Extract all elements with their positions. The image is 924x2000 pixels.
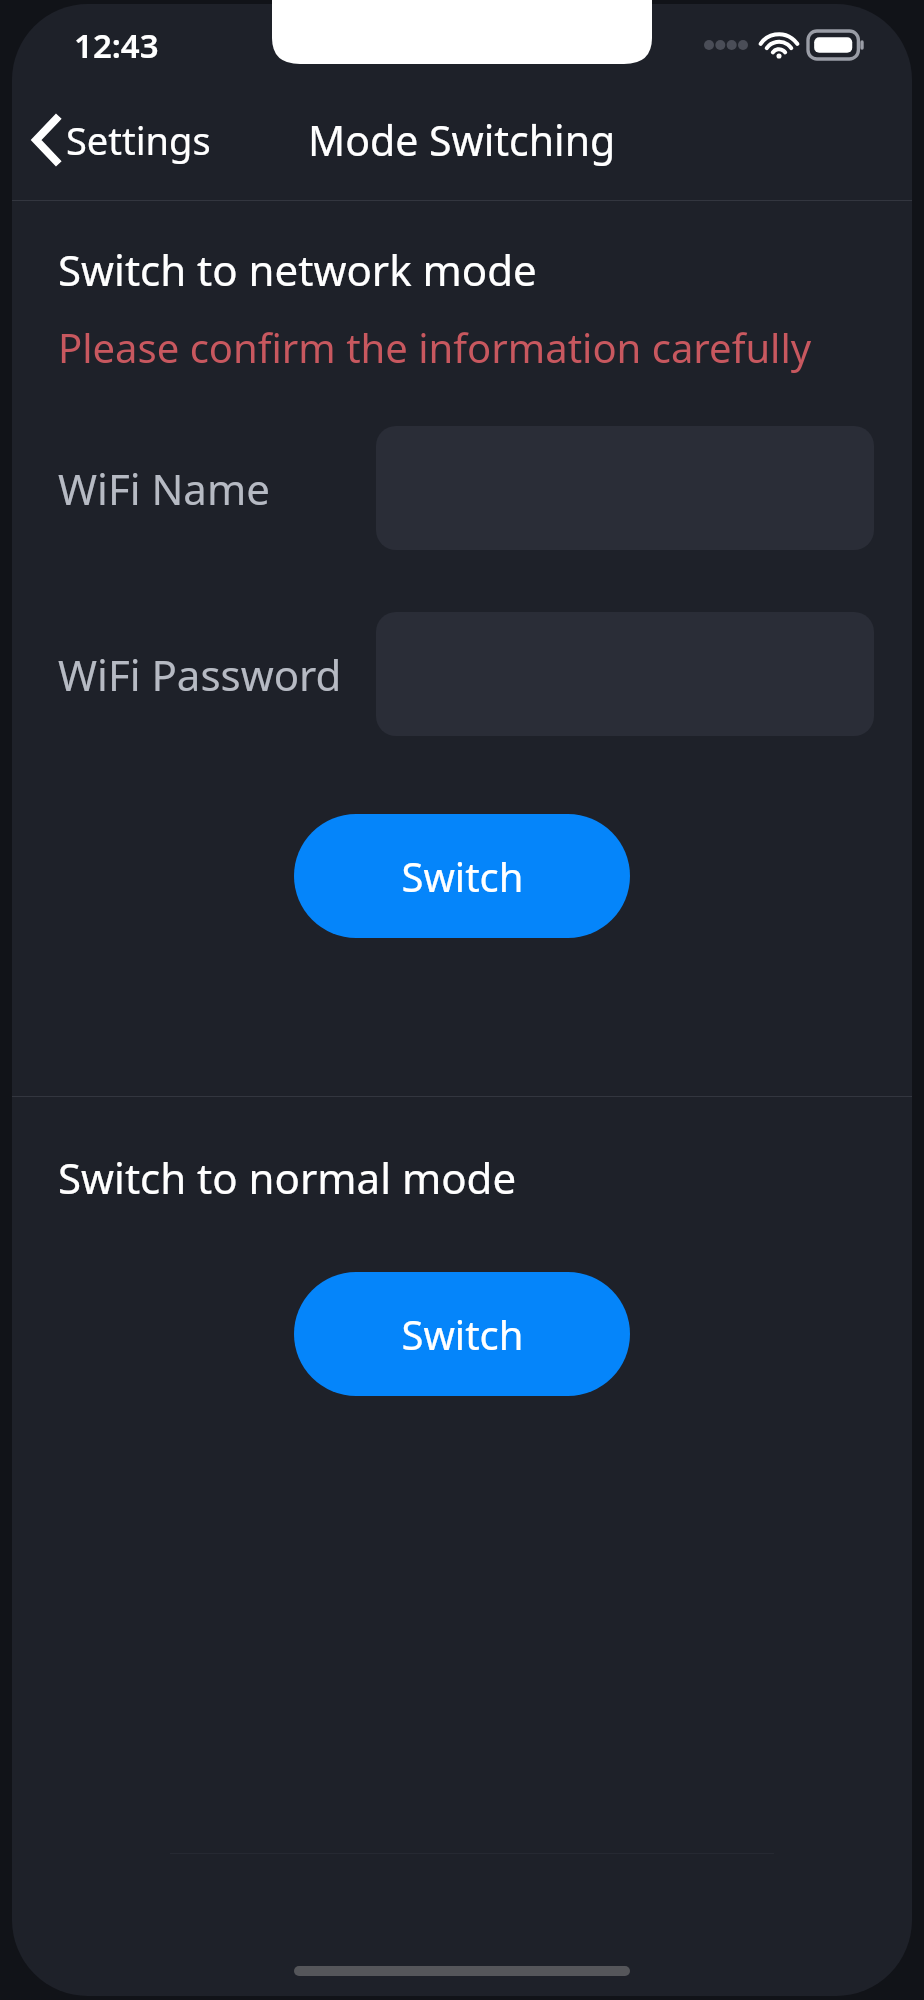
staticText: WiFi Name [58,460,270,517]
button[interactable]: Settings [12,106,227,174]
staticText: Switch [401,1307,524,1361]
staticText: Please confirm the information carefully [58,320,812,374]
staticText: 12:43 [74,23,159,68]
staticText: Switch [401,849,524,903]
staticText: Settings [66,114,211,166]
staticText: Switch to normal mode [58,1149,517,1206]
staticText: WiFi Password [58,646,342,703]
staticText: Switch to network mode [58,241,537,298]
button[interactable]: Switch [294,1272,630,1396]
staticText: Mode Switching [308,112,616,168]
button[interactable]: Switch [294,814,630,938]
